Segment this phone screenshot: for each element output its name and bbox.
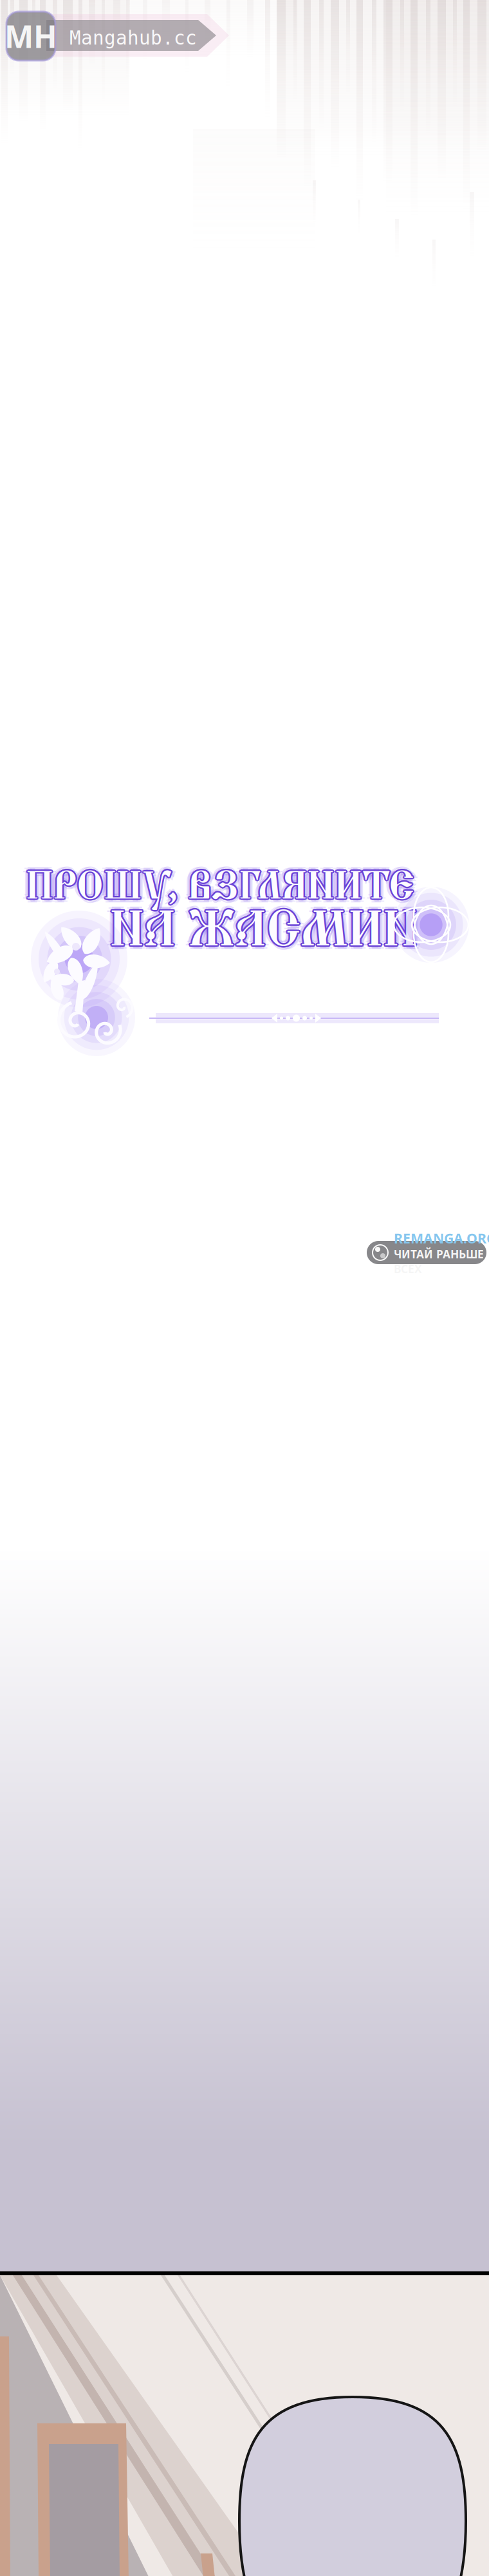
staticText: ПРОШУ, ВЗГЛЯНИТЕ bbox=[26, 866, 414, 916]
staticText: НА ЖАСМИН bbox=[110, 900, 419, 963]
staticText: ПРОШУ, ВЗГЛЯНИТЕ bbox=[27, 862, 416, 912]
button[interactable]: Mangahub.cc bbox=[1, 3, 239, 73]
staticText: НА ЖАСМИН bbox=[114, 899, 422, 962]
staticText: Mangahub.cc bbox=[69, 27, 197, 49]
staticText: ПРОШУ, ВЗГЛЯНИТЕ bbox=[30, 862, 419, 912]
staticText: ПРОШУ, ВЗГЛЯНИТЕ bbox=[27, 863, 415, 913]
staticText: ПРОШУ, ВЗГЛЯНИТЕ bbox=[26, 862, 414, 912]
staticText: ПРОШУ, ВЗГЛЯНИТЕ bbox=[23, 858, 411, 909]
staticText: ПРОШУ, ВЗГЛЯНИТЕ bbox=[25, 861, 413, 911]
staticText: ПРОШУ, ВЗГЛЯНИТЕ bbox=[21, 862, 410, 912]
staticText: ПРОШУ, ВЗГЛЯНИТЕ bbox=[25, 863, 413, 913]
staticText: НА ЖАСМИН bbox=[109, 903, 418, 966]
staticText: ПРОШУ, ВЗГЛЯНИТЕ bbox=[26, 860, 414, 910]
staticText: НА ЖАСМИН bbox=[109, 899, 418, 962]
staticText: ПРОШУ, ВЗГЛЯНИТЕ bbox=[24, 862, 413, 912]
staticText: НА ЖАСМИН bbox=[109, 901, 418, 964]
staticText: НА ЖАСМИН bbox=[106, 896, 414, 959]
staticText: MH bbox=[5, 16, 57, 57]
staticText: НА ЖАСМИН bbox=[108, 898, 416, 961]
staticText: НА ЖАСМИН bbox=[105, 899, 413, 962]
staticText: ПРОШУ, ВЗГЛЯНИТЕ bbox=[26, 863, 414, 914]
staticText: ЧИТАЙ РАНЬШЕ ВСЕХ bbox=[394, 1247, 484, 1276]
staticText: НА ЖАСМИН bbox=[113, 902, 421, 966]
staticText: ПРОШУ, ВЗГЛЯНИТЕ bbox=[27, 861, 415, 911]
staticText: НА ЖАСМИН bbox=[109, 897, 418, 961]
staticText: REMANGA.ORG bbox=[394, 1229, 489, 1247]
staticText: НА ЖАСМИН bbox=[108, 899, 416, 962]
staticText: НА ЖАСМИН bbox=[109, 895, 418, 959]
staticText: НА ЖАСМИН bbox=[110, 898, 419, 961]
staticText: НА ЖАСМИН bbox=[111, 899, 419, 962]
staticText: НА ЖАСМИН bbox=[108, 900, 416, 963]
staticText: ПРОШУ, ВЗГЛЯНИТЕ bbox=[26, 858, 414, 908]
staticText: ПРОШУ, ВЗГЛЯНИТЕ bbox=[29, 865, 418, 915]
